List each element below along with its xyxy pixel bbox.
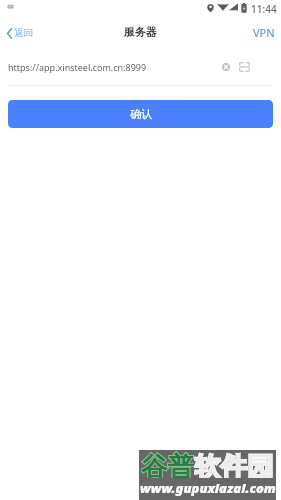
staticText: VPN: [253, 25, 275, 40]
staticText: 服务器: [124, 25, 157, 39]
staticText: 软件园: [194, 450, 274, 478]
button[interactable]: 返回: [0, 23, 41, 43]
button[interactable]: 确认: [8, 100, 273, 128]
staticText: 软件园: [194, 450, 274, 478]
button[interactable]: Scan QR code: [235, 58, 253, 76]
staticText: www.gupuxlazal.com: [140, 479, 276, 497]
staticText: 确认: [130, 107, 152, 121]
staticText: https://app.xinsteel.com.cn:8999: [8, 61, 217, 73]
button[interactable]: Clear text: [217, 58, 235, 76]
staticText: 谷普: [141, 450, 194, 478]
staticText: 11:44: [251, 2, 277, 16]
staticText: 返回: [14, 27, 33, 39]
button[interactable]: VPN: [243, 20, 281, 47]
staticText: 谷普: [141, 450, 194, 478]
